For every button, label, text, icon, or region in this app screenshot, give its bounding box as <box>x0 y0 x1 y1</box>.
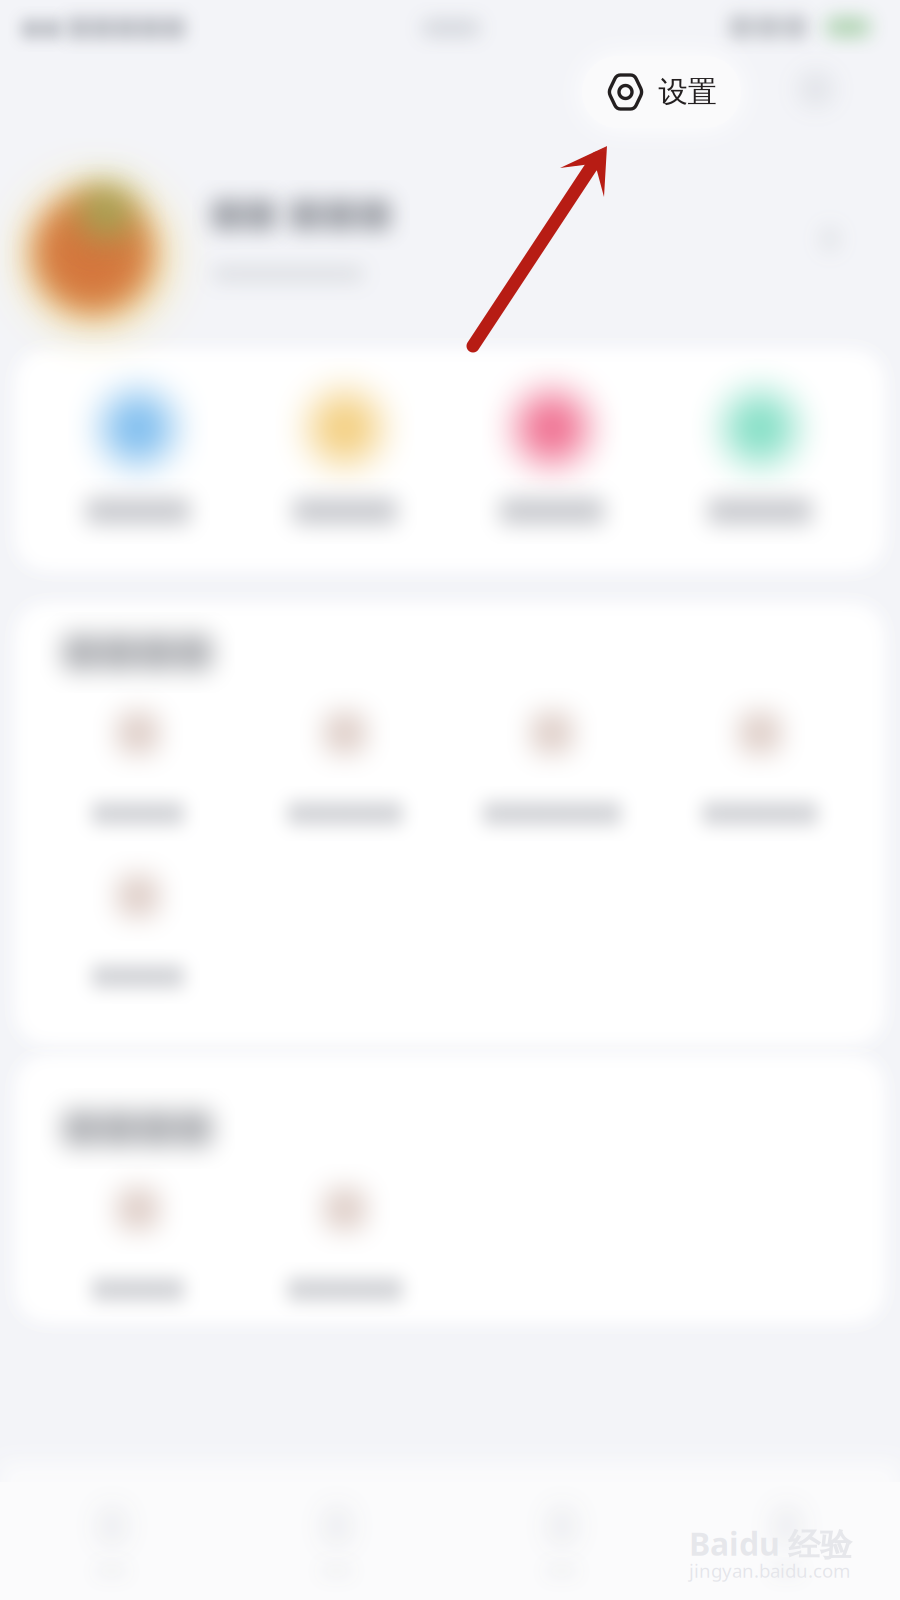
staticText: 设置 <box>658 74 716 110</box>
button[interactable]: 设置 <box>582 56 741 128</box>
button[interactable] <box>38 354 238 554</box>
staticText: Baidu 经验 <box>689 1522 852 1565</box>
button[interactable] <box>38 1156 238 1316</box>
button[interactable]: Tab <box>697 1492 877 1600</box>
button[interactable] <box>245 680 445 840</box>
button[interactable] <box>245 1156 445 1316</box>
button[interactable] <box>245 354 445 554</box>
button[interactable] <box>38 680 238 840</box>
staticText: jingyan.baidu.com <box>689 1558 850 1583</box>
button[interactable] <box>660 354 860 554</box>
button[interactable] <box>452 354 652 554</box>
button[interactable] <box>660 680 860 840</box>
button[interactable] <box>452 680 652 840</box>
button[interactable] <box>38 843 238 1003</box>
